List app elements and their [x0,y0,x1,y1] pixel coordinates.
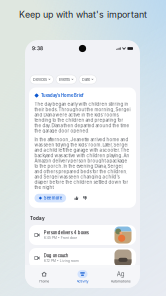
staticText: Person delivers 4 boxes [44,230,89,235]
staticText: Automations [111,279,131,283]
button[interactable]: Devices [30,75,53,84]
button[interactable]: Good response [72,194,81,202]
button[interactable]: Ask Spring Street [30,94,108,106]
button[interactable]: Person delivers 4 boxes [29,225,136,245]
button[interactable]: Dog on couch [29,248,136,268]
button[interactable]: Add [108,94,120,106]
staticText: 6:45 PM • Front door [44,235,77,240]
button[interactable]: Events [56,75,76,84]
staticText: Today [30,215,45,221]
button[interactable]: Ag [102,265,140,288]
staticText: Keep up with what's important [19,9,147,20]
staticText: Home [39,279,49,283]
staticText: In the afternoon, Jeanette arrived home … [34,137,129,190]
button[interactable]: See more [34,194,66,202]
staticText: Dog on couch [44,253,68,258]
staticText: Ag [117,270,125,278]
staticText: Tuesday's Home Brief [41,93,84,98]
button[interactable]: Home [25,265,63,288]
staticText: Date [82,77,90,82]
button[interactable]: Bad response [81,194,89,202]
staticText: The day began early with children stirri… [34,102,130,133]
staticText: 6:12 PM • Living room [44,258,79,263]
staticText: See more [44,196,62,201]
button[interactable]: Activity [63,265,102,288]
staticText: Devices [33,77,47,82]
staticText: Ask Spring Street [39,98,70,103]
staticText: 9:38 [32,46,43,51]
button[interactable]: Date [79,75,96,84]
button[interactable]: Profile [120,94,132,106]
staticText: Activity [76,279,88,283]
staticText: Events [59,77,70,82]
